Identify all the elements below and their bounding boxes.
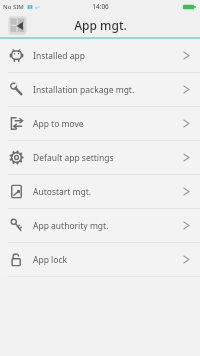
staticText: App authority mgt. — [33, 220, 109, 232]
staticText: Autostart mgt. — [33, 186, 92, 198]
button[interactable]: Installation package mgt. — [0, 73, 200, 106]
button[interactable]: App authority mgt. — [0, 209, 200, 242]
staticText: App to move — [33, 118, 84, 130]
staticText: Installation package mgt. — [33, 84, 135, 96]
staticText: App mgt. — [74, 17, 127, 33]
button[interactable]: App to move — [0, 107, 200, 140]
staticText: Installed app — [33, 50, 85, 62]
staticText: App lock — [33, 254, 68, 266]
button[interactable]: Installed app — [0, 39, 200, 72]
staticText: No SIM — [3, 3, 24, 11]
button[interactable]: Default app settings — [0, 141, 200, 174]
staticText: Default app settings — [33, 152, 114, 164]
button[interactable]: Autostart mgt. — [0, 175, 200, 208]
button[interactable]: App lock — [0, 243, 200, 276]
button[interactable]: Back to app grid — [7, 15, 28, 36]
staticText: 14:06 — [92, 2, 109, 11]
